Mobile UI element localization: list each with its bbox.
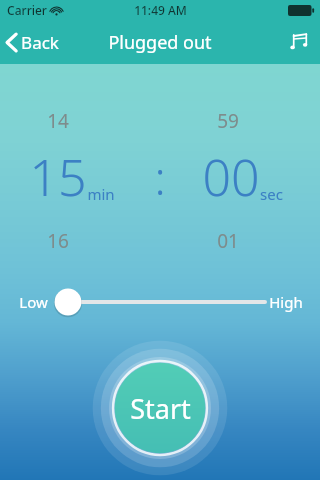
staticText: sec xyxy=(260,184,283,204)
staticText: 00 xyxy=(202,143,260,211)
button[interactable]: 00 xyxy=(200,143,281,211)
staticText: 16 xyxy=(47,228,69,254)
staticText: Carrier xyxy=(7,2,47,18)
staticText: 01 xyxy=(217,228,239,254)
staticText: : xyxy=(154,146,166,209)
button[interactable]: Low xyxy=(0,279,320,325)
staticText: 15 xyxy=(29,143,87,211)
staticText: 14 xyxy=(47,108,69,134)
button[interactable]: Start xyxy=(92,340,228,476)
button[interactable]: 15 xyxy=(37,143,123,211)
button[interactable]: Sound xyxy=(279,25,320,60)
button[interactable]: Back xyxy=(0,25,69,60)
staticText: Back xyxy=(21,31,59,54)
staticText: Plugged out xyxy=(108,30,212,55)
staticText: 59 xyxy=(217,108,239,134)
staticText: 11:49 AM xyxy=(134,2,187,18)
staticText: Start xyxy=(130,390,191,427)
staticText: Low xyxy=(19,292,48,312)
staticText: min xyxy=(87,184,115,204)
staticText: High xyxy=(269,292,303,312)
